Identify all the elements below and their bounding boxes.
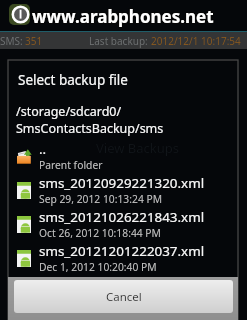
staticText: Parent folder: [39, 158, 103, 172]
staticText: www.arabphones.net: [33, 4, 215, 27]
staticText: 2012/12/1 10:17:54: [151, 34, 241, 48]
staticText: sms_20120929221320.xml: [39, 174, 205, 192]
staticText: www.arabphones.net: [33, 5, 215, 28]
staticText: Dec 1, 2012 10:20:40 PM: [39, 260, 157, 274]
staticText: www.arabphones.net: [31, 5, 213, 28]
button[interactable]: ..: [8, 139, 238, 173]
staticText: www.arabphones.net: [31, 4, 213, 27]
staticText: www.arabphones.net: [31, 6, 213, 29]
staticText: Sep 29, 2012 10:13:24 PM: [39, 192, 163, 206]
staticText: sms_20121201222037.xml: [39, 242, 205, 260]
staticText: Select backup file: [18, 71, 128, 89]
staticText: SMS:: [0, 34, 23, 48]
staticText: www.arabphones.net: [32, 5, 214, 28]
staticText: Cancel: [106, 289, 142, 305]
staticText: sms_20121026221843.xml: [39, 208, 205, 226]
staticText: www.arabphones.net: [32, 4, 214, 27]
staticText: www.arabphones.net: [32, 6, 214, 29]
staticText: SmsContactsBackup/sms: [16, 120, 164, 137]
staticText: 351: [25, 34, 43, 48]
button[interactable]: Cancel: [14, 280, 233, 313]
staticText: /storage/sdcard0/: [16, 103, 122, 120]
staticText: View Backups: [96, 139, 180, 157]
staticText: Oct 26, 2012 10:18:44 PM: [39, 226, 161, 240]
staticText: Last backup:: [89, 34, 148, 48]
staticText: ..: [39, 140, 47, 158]
button[interactable]: sms_20121026221843.xml: [8, 207, 238, 241]
button[interactable]: sms_20121201222037.xml: [8, 241, 238, 275]
button[interactable]: sms_20120929221320.xml: [8, 173, 238, 207]
staticText: www.arabphones.net: [33, 6, 215, 29]
